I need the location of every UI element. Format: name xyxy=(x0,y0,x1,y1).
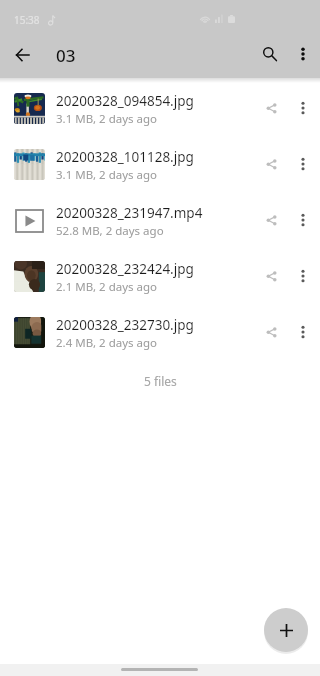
staticText: 20200328_231947.mp4 xyxy=(56,204,203,222)
button[interactable]: 20200328_231947.mp4 xyxy=(0,192,320,248)
button[interactable]: 20200328_094854.jpg xyxy=(0,80,320,136)
button[interactable]: 20200328_101128.jpg xyxy=(0,136,320,192)
button[interactable]: Back xyxy=(2,35,42,75)
staticText: 3.1 MB, 2 days ago xyxy=(56,111,158,127)
button[interactable]: Search xyxy=(250,34,290,74)
staticText: 3.1 MB, 2 days ago xyxy=(56,167,158,183)
staticText: 03 xyxy=(56,44,76,67)
button[interactable]: Share xyxy=(254,258,290,294)
button[interactable]: Share xyxy=(254,202,290,238)
button[interactable]: Add xyxy=(264,608,308,652)
button[interactable]: More options xyxy=(286,315,320,349)
button[interactable]: 20200328_232424.jpg xyxy=(0,248,320,304)
staticText: 20200328_101128.jpg xyxy=(56,148,194,166)
button[interactable]: 20200328_232730.jpg xyxy=(0,304,320,360)
staticText: 15:38 xyxy=(14,13,40,27)
button[interactable]: Share xyxy=(254,90,290,126)
staticText: 2.1 MB, 2 days ago xyxy=(56,279,158,295)
button[interactable]: More options xyxy=(286,203,320,237)
button[interactable]: More options xyxy=(285,36,320,72)
button[interactable]: More options xyxy=(286,259,320,293)
staticText: 52.8 MB, 2 days ago xyxy=(56,223,164,239)
staticText: 20200328_232424.jpg xyxy=(56,260,194,278)
button[interactable]: More options xyxy=(286,147,320,181)
button[interactable]: Share xyxy=(254,146,290,182)
staticText: 2.4 MB, 2 days ago xyxy=(56,335,158,351)
button[interactable]: More options xyxy=(286,91,320,125)
staticText: 20200328_232730.jpg xyxy=(56,316,194,334)
staticText: 20200328_094854.jpg xyxy=(56,92,194,110)
button[interactable]: Share xyxy=(254,314,290,350)
staticText: 5 files xyxy=(144,373,177,389)
